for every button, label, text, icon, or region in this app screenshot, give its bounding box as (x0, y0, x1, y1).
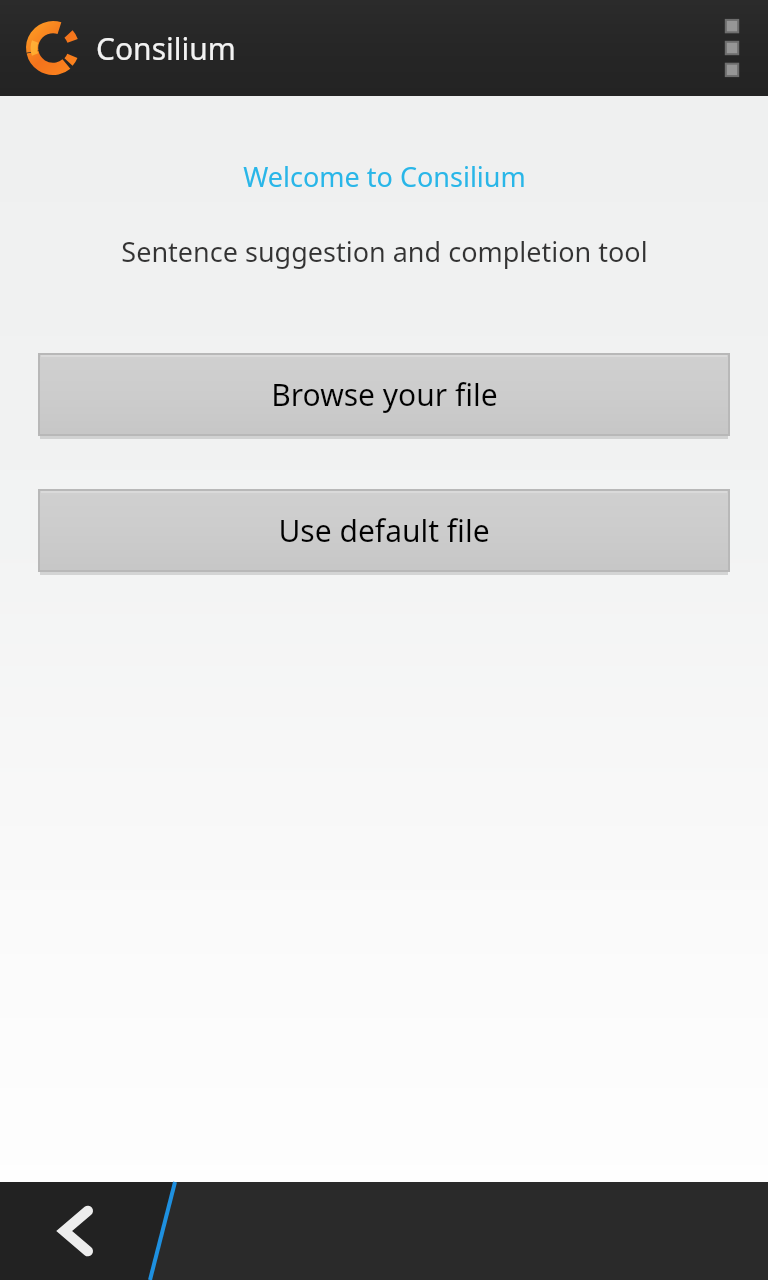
button[interactable]: Use default file (39, 490, 729, 575)
button[interactable]: Browse your file (39, 354, 729, 439)
staticText: Welcome to Consilium (243, 158, 526, 195)
staticText: Browse your file (271, 374, 498, 415)
staticText: Sentence suggestion and completion tool (121, 233, 648, 270)
button[interactable]: Back (0, 1182, 150, 1280)
staticText: Use default file (278, 510, 490, 551)
staticText: Consilium (96, 28, 236, 69)
button[interactable]: More options (696, 0, 768, 96)
